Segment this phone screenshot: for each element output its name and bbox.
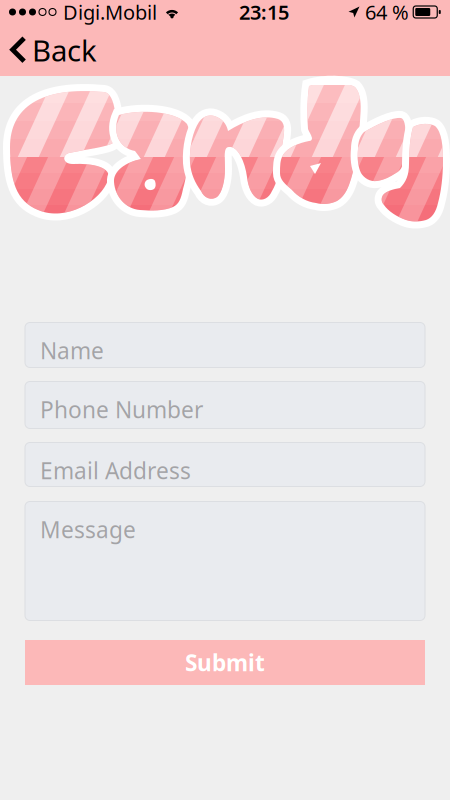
- button[interactable]: Submit: [25, 640, 425, 685]
- staticText: Digi.Mobil: [63, 0, 157, 25]
- staticText: Submit: [185, 647, 265, 677]
- button[interactable]: Back: [0, 22, 111, 77]
- staticText: 23:15: [239, 0, 289, 25]
- staticText: Phone Number: [40, 394, 203, 425]
- staticText: Name: [40, 335, 104, 366]
- staticText: Back: [32, 30, 97, 69]
- staticText: 64 %: [365, 0, 409, 25]
- staticText: Email Address: [40, 455, 191, 486]
- staticText: Message: [40, 514, 136, 545]
